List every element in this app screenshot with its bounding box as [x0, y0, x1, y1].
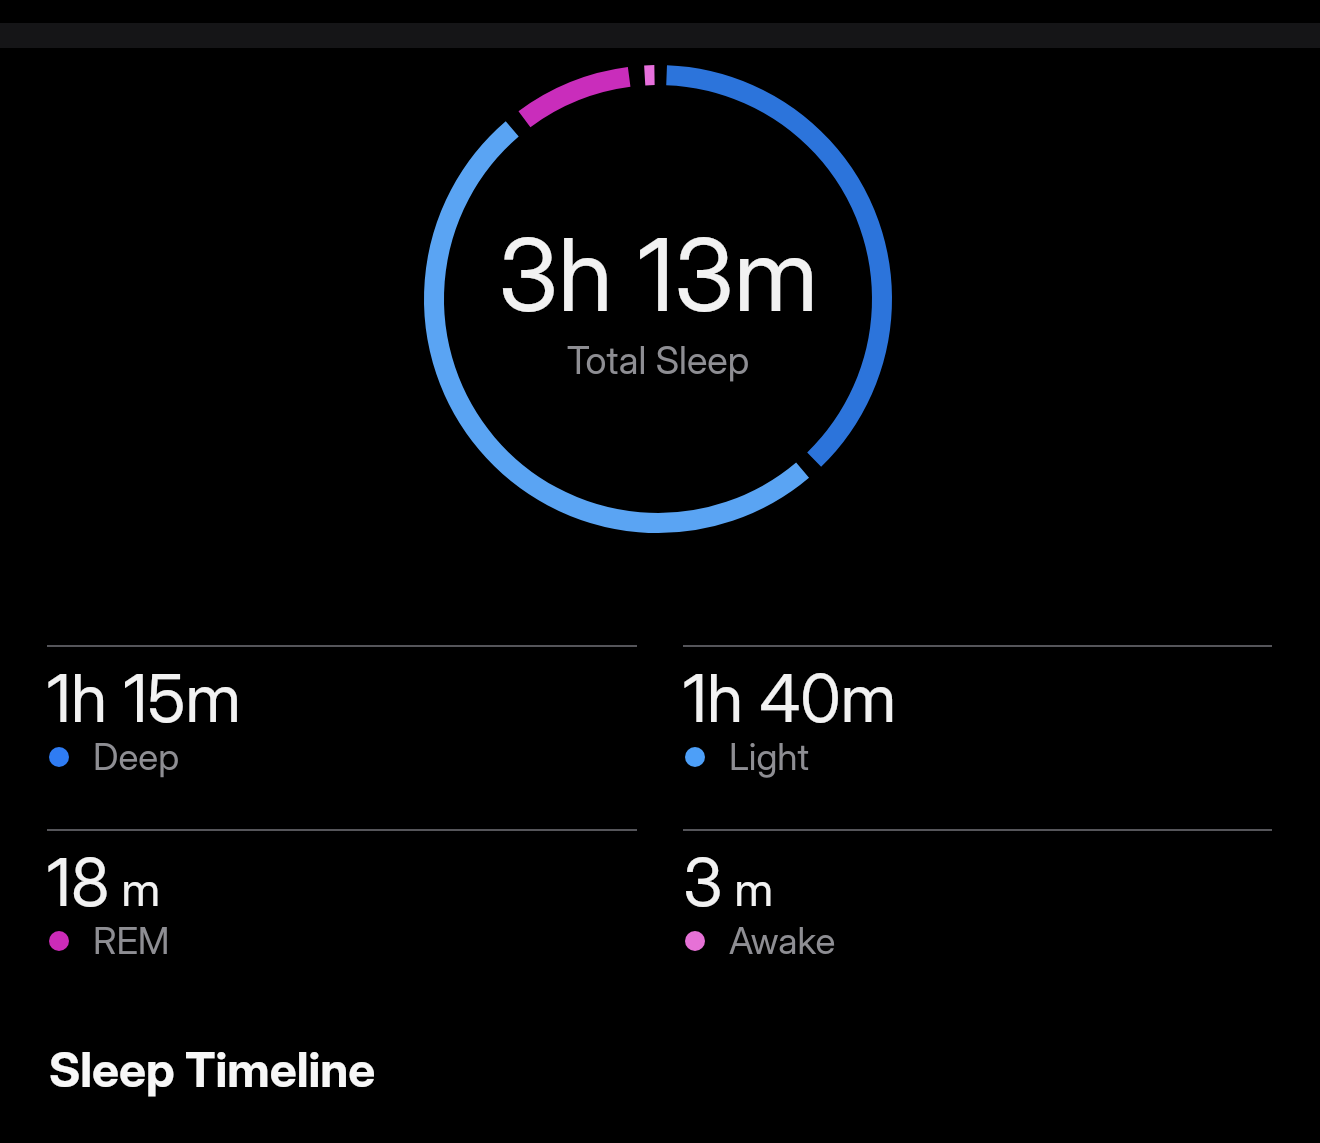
button[interactable]: 3: [683, 829, 1272, 967]
button[interactable]: 1h 15m: [47, 645, 637, 783]
staticText: Light: [729, 734, 810, 779]
staticText: 18: [47, 842, 110, 922]
staticText: m: [110, 861, 161, 917]
button[interactable]: 18: [47, 829, 637, 967]
button[interactable]: 1h 40m: [683, 645, 1272, 783]
staticText: m: [723, 861, 774, 917]
staticText: 1h 40m: [683, 658, 897, 738]
staticText: 3h 13m: [358, 214, 958, 335]
staticText: Deep: [93, 734, 180, 779]
staticText: Sleep Timeline: [49, 1040, 376, 1098]
staticText: REM: [93, 918, 170, 963]
staticText: Total Sleep: [358, 337, 958, 383]
staticText: 1h 15m: [47, 658, 241, 738]
staticText: 3: [683, 842, 723, 922]
staticText: Awake: [729, 918, 836, 963]
